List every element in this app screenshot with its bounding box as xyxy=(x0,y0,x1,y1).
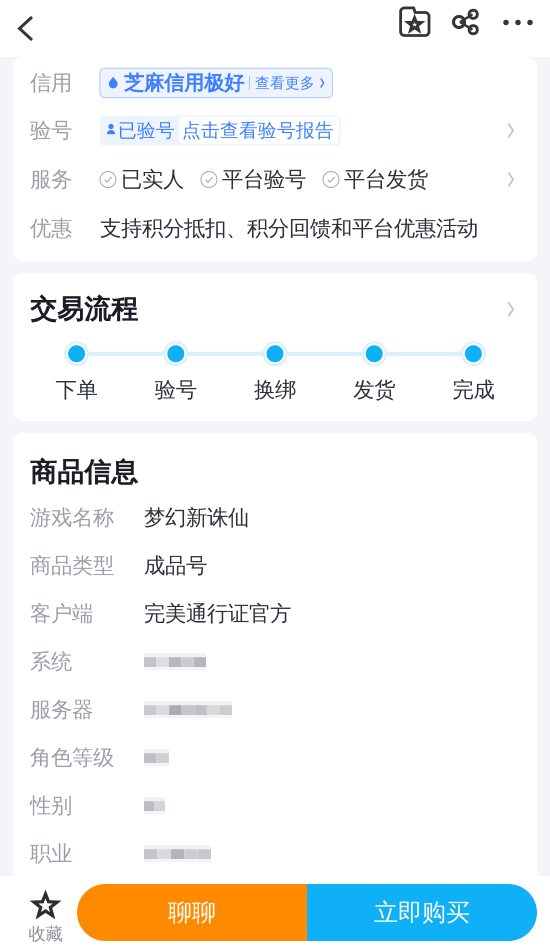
button[interactable]: 交易流程 xyxy=(13,273,537,326)
staticText: 芝麻信用极好 xyxy=(124,71,244,95)
staticText: 客户端 xyxy=(30,601,93,627)
staticText: 商品类型 xyxy=(30,553,114,579)
staticText: 收藏 xyxy=(28,923,62,945)
staticText: 完成 xyxy=(452,377,494,403)
staticText: 成品号 xyxy=(144,553,207,579)
staticText: 信用 xyxy=(30,70,72,96)
button[interactable]: Share xyxy=(452,1,480,56)
staticText: 验号 xyxy=(155,377,197,403)
button[interactable]: 收藏 xyxy=(0,871,77,949)
staticText: 下单 xyxy=(56,377,98,403)
staticText: 性别 xyxy=(30,793,72,819)
staticText: 平台验号 xyxy=(222,166,306,193)
button[interactable]: More xyxy=(503,1,533,55)
staticText: 立即购买 xyxy=(374,898,470,927)
staticText: 已实人 xyxy=(121,166,184,193)
staticText: 系统 xyxy=(30,649,72,675)
staticText: 换绑 xyxy=(254,377,296,403)
button[interactable]: Collection xyxy=(399,0,431,56)
staticText: 聊聊 xyxy=(168,898,216,927)
staticText: 角色等级 xyxy=(30,745,114,771)
button[interactable]: 验号 xyxy=(30,106,520,155)
button[interactable]: 服务 xyxy=(30,155,520,204)
staticText: 平台发货 xyxy=(344,166,428,193)
staticText: 游戏名称 xyxy=(30,505,114,531)
staticText: 支持积分抵扣、积分回馈和平台优惠活动 xyxy=(100,215,478,242)
staticText: 服务 xyxy=(30,166,72,193)
staticText: 已验号 xyxy=(118,119,175,142)
staticText: 服务器 xyxy=(30,697,93,723)
button[interactable]: 立即购买 xyxy=(307,884,537,941)
staticText: 验号 xyxy=(30,117,72,144)
staticText: 交易流程 xyxy=(30,293,138,326)
staticText: 优惠 xyxy=(30,215,72,242)
staticText: 职业 xyxy=(30,841,72,867)
staticText: 商品信息 xyxy=(30,456,138,489)
button[interactable]: Back xyxy=(0,0,48,57)
staticText: 查看更多 xyxy=(255,74,315,92)
staticText: 发货 xyxy=(353,377,395,403)
button[interactable]: 聊聊 xyxy=(77,884,307,941)
button[interactable]: 芝麻信用极好 xyxy=(100,68,332,98)
staticText: 梦幻新诛仙 xyxy=(144,505,249,531)
staticText: 点击查看验号报告 xyxy=(182,119,334,142)
staticText: 完美通行证官方 xyxy=(144,601,291,627)
